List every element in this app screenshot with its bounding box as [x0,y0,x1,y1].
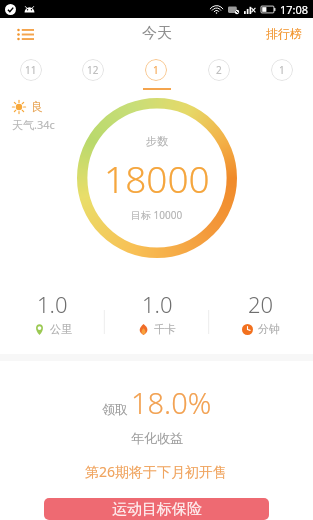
button[interactable]: 排行榜 [264,22,304,45]
staticText: 步数 [146,134,168,148]
staticText: 第26期将于下月初开售 [85,462,228,481]
staticText: 今天 [142,24,172,43]
staticText: 2 [216,63,222,77]
staticText: 年化收益 [131,430,183,446]
staticText: 分钟 [258,322,280,336]
staticText: 12 [87,63,99,77]
staticText: 公里 [50,322,72,336]
staticText: 17:08 [280,2,309,17]
button[interactable]: 1.0 [0,289,105,336]
button[interactable]: 良 [12,99,55,132]
staticText: 千卡 [154,322,176,336]
button[interactable]: 11 [0,49,62,91]
staticText: 18.0% [131,383,212,422]
staticText: 良 [31,99,43,114]
staticText: 1.0 [142,289,173,319]
staticText: 1 [153,63,159,77]
staticText: 排行榜 [266,26,302,41]
staticText: 20 [248,289,274,319]
staticText: 11 [25,63,37,77]
button[interactable]: 12 [62,49,124,91]
button[interactable]: 运动目标保险 [44,498,269,520]
staticText: 1.0 [37,289,68,319]
staticText: 运动目标保险 [112,500,202,519]
button[interactable]: Menu [10,19,40,49]
staticText: 目标 10000 [131,208,183,222]
button[interactable]: 20 [209,289,313,336]
button[interactable]: 步数 [77,98,237,258]
staticText: 领取 [102,401,128,417]
button[interactable]: 2 [187,49,250,91]
staticText: 18000 [104,153,210,203]
button[interactable]: 1.0 [105,289,209,336]
button[interactable]: 1 [124,49,187,91]
staticText: 天气.34c [12,117,55,132]
button[interactable]: 1 [250,49,313,91]
staticText: 1 [279,63,285,77]
